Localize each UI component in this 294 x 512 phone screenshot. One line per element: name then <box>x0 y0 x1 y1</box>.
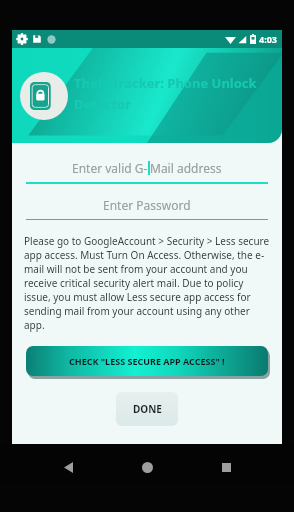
staticText: Enter Password <box>103 197 191 213</box>
staticText: Please go to GoogleAccount > Security > … <box>24 234 270 332</box>
button[interactable]: Enter valid G- <box>26 157 268 184</box>
button[interactable]: Back <box>57 456 79 478</box>
button[interactable]: Enter Password <box>26 194 268 220</box>
staticText: CHECK "LESS SECURE APP ACCESS" ! <box>69 355 225 367</box>
staticText: 4:03 <box>259 33 277 45</box>
button[interactable]: Recent apps <box>215 456 237 478</box>
staticText: Enter valid G- <box>72 160 148 176</box>
staticText: Mail address <box>150 160 222 176</box>
button[interactable]: DONE <box>116 392 178 426</box>
staticText: Detector <box>74 95 131 113</box>
button[interactable]: Home <box>136 456 158 478</box>
button[interactable]: CHECK "LESS SECURE APP ACCESS" ! <box>26 346 268 376</box>
staticText: DONE <box>133 402 162 416</box>
staticText: Theft Tracker: Phone Unlock <box>74 74 257 92</box>
